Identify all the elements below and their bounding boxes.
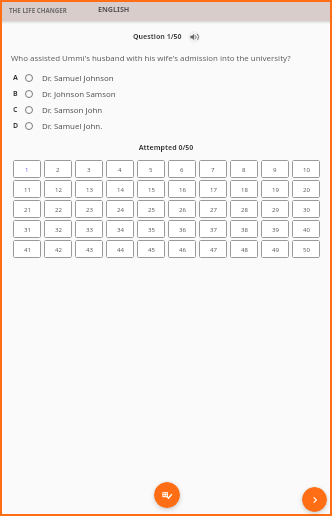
button[interactable]: 34 (106, 220, 134, 238)
button[interactable]: 42 (44, 240, 72, 258)
button[interactable]: 22 (44, 200, 72, 218)
button[interactable]: 5 (137, 160, 165, 178)
staticText: 4 (118, 165, 122, 173)
button[interactable]: 14 (106, 180, 134, 198)
button[interactable]: Submit (154, 482, 180, 508)
staticText: 32 (55, 225, 62, 233)
button[interactable]: 40 (292, 220, 320, 238)
button[interactable]: 9 (261, 160, 289, 178)
button[interactable]: 21 (13, 200, 41, 218)
button[interactable]: 6 (168, 160, 196, 178)
staticText: A (13, 73, 18, 83)
staticText: 29 (272, 205, 279, 213)
button[interactable]: 12 (44, 180, 72, 198)
button[interactable]: 37 (199, 220, 227, 238)
button[interactable]: 47 (199, 240, 227, 258)
button[interactable]: 7 (199, 160, 227, 178)
button[interactable]: 33 (75, 220, 103, 238)
button[interactable]: 39 (261, 220, 289, 238)
button[interactable]: 19 (261, 180, 289, 198)
staticText: ENGLISH (98, 4, 130, 14)
staticText: 10 (303, 165, 310, 173)
staticText: 7 (211, 165, 215, 173)
button[interactable]: 49 (261, 240, 289, 258)
button[interactable]: C (2, 102, 330, 118)
button[interactable]: 24 (106, 200, 134, 218)
staticText: 1 (25, 165, 29, 173)
staticText: 2 (56, 165, 60, 173)
staticText: 3 (87, 165, 91, 173)
staticText: 43 (86, 245, 93, 253)
staticText: 21 (24, 205, 31, 213)
staticText: 25 (148, 205, 155, 213)
button[interactable]: 25 (137, 200, 165, 218)
staticText: 30 (303, 205, 310, 213)
button[interactable]: Next question (302, 487, 327, 512)
staticText: 11 (24, 185, 31, 193)
staticText: Question 1/50 (133, 32, 182, 42)
button[interactable]: 30 (292, 200, 320, 218)
button[interactable]: 32 (44, 220, 72, 238)
staticText: D (13, 121, 19, 131)
button[interactable]: 23 (75, 200, 103, 218)
staticText: 27 (210, 205, 217, 213)
staticText: 40 (303, 225, 310, 233)
staticText: 12 (55, 185, 62, 193)
staticText: 50 (303, 245, 310, 253)
staticText: 6 (180, 165, 184, 173)
button[interactable]: 46 (168, 240, 196, 258)
staticText: 19 (272, 185, 279, 193)
staticText: Dr. Samuel Johnson (42, 73, 114, 84)
button[interactable]: 10 (292, 160, 320, 178)
button[interactable]: 15 (137, 180, 165, 198)
button[interactable]: 18 (230, 180, 258, 198)
staticText: 8 (242, 165, 246, 173)
button[interactable]: D (2, 118, 330, 134)
button[interactable]: 8 (230, 160, 258, 178)
button[interactable]: 3 (75, 160, 103, 178)
staticText: 42 (55, 245, 62, 253)
staticText: THE LIFE CHANGER (9, 6, 67, 14)
button[interactable]: A (2, 70, 330, 86)
staticText: C (13, 105, 18, 115)
button[interactable]: 36 (168, 220, 196, 238)
staticText: 31 (24, 225, 31, 233)
button[interactable]: 43 (75, 240, 103, 258)
staticText: Attempted 0/50 (2, 143, 330, 153)
button[interactable]: 27 (199, 200, 227, 218)
button[interactable]: 1 (13, 160, 41, 178)
staticText: 24 (117, 205, 124, 213)
staticText: Dr. Johnson Samson (42, 89, 116, 100)
button[interactable]: B (2, 86, 330, 102)
button[interactable]: 2 (44, 160, 72, 178)
button[interactable]: 28 (230, 200, 258, 218)
staticText: 38 (241, 225, 248, 233)
staticText: Dr. Samuel John. (42, 121, 103, 132)
button[interactable]: 13 (75, 180, 103, 198)
button[interactable]: 35 (137, 220, 165, 238)
button[interactable]: 4 (106, 160, 134, 178)
button[interactable]: 50 (292, 240, 320, 258)
button[interactable]: 16 (168, 180, 196, 198)
staticText: 17 (210, 185, 217, 193)
staticText: 13 (86, 185, 93, 193)
button[interactable]: Play audio (188, 31, 200, 43)
staticText: 44 (117, 245, 124, 253)
button[interactable]: 41 (13, 240, 41, 258)
button[interactable]: 48 (230, 240, 258, 258)
button[interactable]: 45 (137, 240, 165, 258)
staticText: 23 (86, 205, 93, 213)
button[interactable]: 38 (230, 220, 258, 238)
staticText: 35 (148, 225, 155, 233)
button[interactable]: 29 (261, 200, 289, 218)
button[interactable]: 20 (292, 180, 320, 198)
staticText: 41 (24, 245, 31, 253)
button[interactable]: 44 (106, 240, 134, 258)
staticText: B (13, 89, 18, 99)
button[interactable]: 11 (13, 180, 41, 198)
button[interactable]: 31 (13, 220, 41, 238)
staticText: 47 (210, 245, 217, 253)
staticText: 26 (179, 205, 186, 213)
button[interactable]: 26 (168, 200, 196, 218)
button[interactable]: 17 (199, 180, 227, 198)
